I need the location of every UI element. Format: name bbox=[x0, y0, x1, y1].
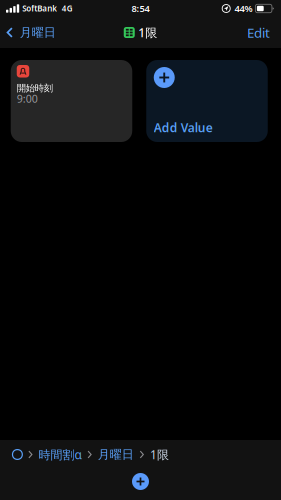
button[interactable]: Add Value bbox=[146, 60, 268, 142]
staticText: 1限 bbox=[138, 24, 157, 40]
button[interactable]: 開始時刻 bbox=[11, 60, 132, 142]
staticText: Add Value bbox=[154, 120, 213, 135]
staticText: 1限 bbox=[150, 446, 169, 462]
staticText: 4G bbox=[62, 3, 73, 14]
staticText: 9:00 bbox=[17, 91, 38, 106]
staticText: 8:54 bbox=[131, 2, 149, 15]
button[interactable]: Home bbox=[12, 450, 22, 459]
staticText: SoftBank bbox=[22, 3, 57, 14]
staticText: 月曜日 bbox=[98, 447, 134, 462]
staticText: 44% bbox=[234, 2, 252, 15]
button[interactable]: Add bbox=[132, 473, 149, 490]
button[interactable]: 月曜日 bbox=[0, 18, 62, 47]
button[interactable]: 時間割α bbox=[38, 446, 81, 462]
staticText: 時間割α bbox=[38, 446, 81, 462]
button[interactable]: 月曜日 bbox=[98, 447, 134, 462]
staticText: 開始時刻 bbox=[17, 82, 53, 94]
staticText: Edit bbox=[247, 24, 270, 41]
staticText: 月曜日 bbox=[20, 25, 56, 40]
button[interactable]: Edit bbox=[236, 18, 281, 47]
